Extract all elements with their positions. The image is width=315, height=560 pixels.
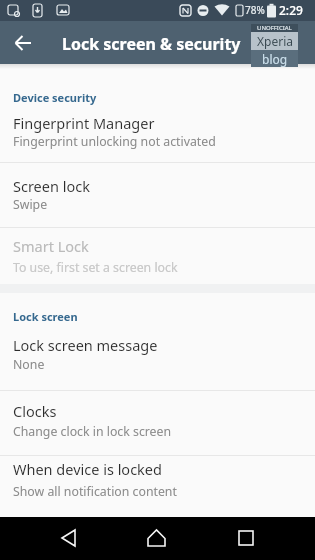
staticText: Show all notification content: [13, 483, 177, 500]
staticText: Device security: [13, 90, 97, 105]
staticText: 78%: [245, 3, 265, 17]
staticText: None: [13, 356, 45, 373]
staticText: Clocks: [13, 401, 57, 421]
staticText: 2:29: [279, 2, 303, 18]
staticText: Lock screen: [13, 309, 78, 324]
staticText: Lock screen & security: [62, 33, 241, 55]
staticText: Change clock in lock screen: [13, 423, 172, 440]
staticText: Fingerprint Manager: [13, 113, 155, 133]
staticText: Swipe: [13, 196, 48, 213]
staticText: Lock screen message: [13, 335, 158, 355]
staticText: Fingerprint unlocking not activated: [13, 133, 216, 150]
staticText: When device is locked: [13, 459, 162, 479]
staticText: Screen lock: [13, 176, 90, 196]
staticText: Smart Lock: [13, 236, 89, 256]
staticText: Xperia: [257, 33, 293, 49]
staticText: To use, first set a screen lock: [13, 259, 178, 276]
staticText: blog: [262, 51, 288, 67]
staticText: UNOFFICIAL: [257, 24, 292, 32]
